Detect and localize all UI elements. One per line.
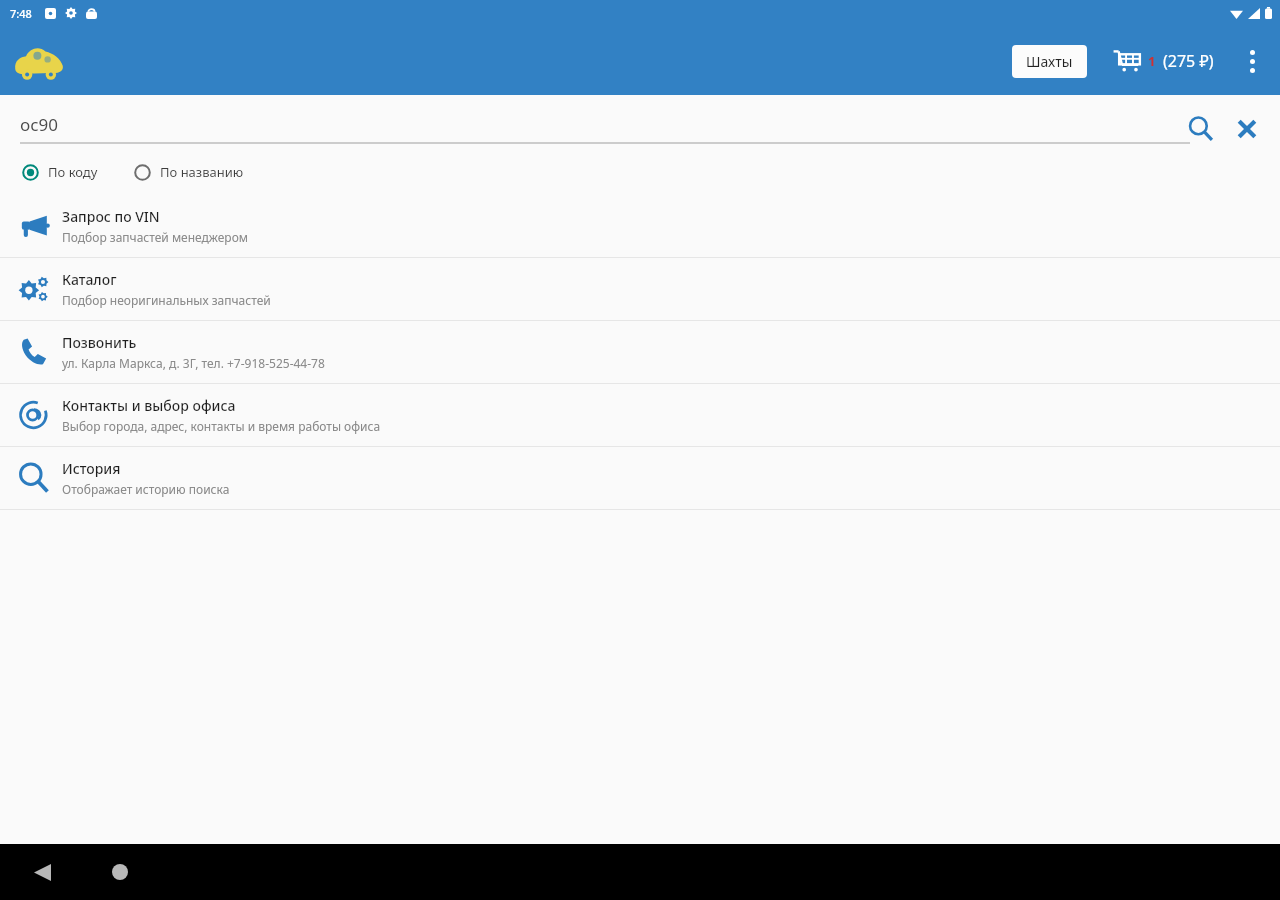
staticText: По коду (48, 163, 98, 181)
button[interactable]: Ещё (1234, 39, 1270, 83)
staticText: Шахты (1026, 52, 1073, 71)
staticText: Запрос по VIN (62, 207, 160, 226)
staticText: 1 (1148, 52, 1156, 70)
staticText: История (62, 459, 121, 478)
staticText: Контакты и выбор офиса (62, 396, 236, 415)
staticText: 7:48 (10, 6, 32, 21)
staticText: Выбор города, адрес, контакты и время ра… (62, 418, 381, 434)
staticText: oc90 (20, 113, 58, 136)
staticText: ул. Карла Маркса, д. 3Г, тел. +7-918-525… (62, 355, 325, 371)
button[interactable]: Контакты и выбор офиса (0, 384, 1280, 446)
staticText: Каталог (62, 270, 117, 289)
button[interactable]: История (0, 447, 1280, 509)
staticText: Подбор неоригинальных запчастей (62, 292, 271, 308)
button[interactable]: 1 (1109, 43, 1218, 79)
staticText: (275 ₽) (1163, 50, 1214, 72)
button[interactable]: Очистить (1230, 112, 1264, 146)
button[interactable]: oc90 (20, 113, 58, 136)
button[interactable]: Запрос по VIN (0, 195, 1280, 257)
button[interactable]: Каталог (0, 258, 1280, 320)
staticText: По названию (160, 163, 244, 181)
button[interactable]: Логотип (12, 41, 66, 81)
button[interactable]: Шахты (1012, 45, 1087, 78)
button[interactable]: Поиск (1184, 112, 1218, 146)
staticText: Подбор запчастей менеджером (62, 229, 248, 245)
button[interactable]: Домой (100, 852, 140, 892)
staticText: Позвонить (62, 333, 137, 352)
button[interactable]: Назад (22, 852, 62, 892)
button[interactable]: По названию (134, 161, 256, 183)
staticText: Отображает историю поиска (62, 481, 230, 497)
button[interactable]: По коду (22, 161, 110, 183)
button[interactable]: Позвонить (0, 321, 1280, 383)
